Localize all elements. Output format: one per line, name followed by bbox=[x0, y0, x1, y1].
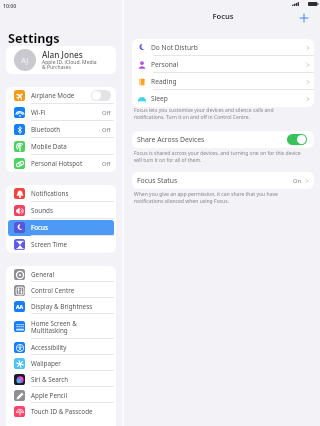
button[interactable]: Wi-Fi bbox=[6, 104, 116, 121]
button[interactable]: Touch ID & Passcode bbox=[6, 403, 116, 419]
button[interactable]: Do Not Disturb bbox=[132, 39, 314, 56]
button[interactable]: Mobile Data bbox=[6, 138, 116, 155]
staticText: Focus bbox=[212, 11, 234, 21]
staticText: Bluetooth bbox=[31, 125, 102, 134]
staticText: Reading bbox=[151, 77, 306, 86]
staticText: AA bbox=[16, 303, 24, 310]
button[interactable]: Share Across Devices bbox=[132, 131, 314, 148]
staticText: Settings bbox=[8, 30, 60, 47]
staticText: Wi-Fi bbox=[31, 108, 102, 117]
staticText: On bbox=[293, 177, 302, 185]
button[interactable]: Focus bbox=[6, 219, 116, 236]
staticText: Personal bbox=[151, 60, 306, 69]
staticText: Sounds bbox=[31, 206, 111, 215]
button[interactable]: Screen Time bbox=[6, 236, 116, 253]
button[interactable]: Accessibility bbox=[6, 339, 116, 355]
button[interactable]: AA bbox=[6, 298, 116, 314]
staticText: Wallpaper bbox=[31, 359, 111, 368]
staticText: Do Not Disturb bbox=[151, 43, 306, 52]
staticText: Focus lets you customise your devices an… bbox=[134, 107, 274, 120]
staticText: Focus bbox=[31, 223, 111, 232]
staticText: Screen Time bbox=[31, 240, 111, 249]
button[interactable]: Reading bbox=[132, 73, 314, 90]
button[interactable]: AJ bbox=[6, 46, 116, 74]
staticText: Airplane Mode bbox=[31, 91, 91, 100]
button[interactable]: Personal Hotspot bbox=[6, 155, 116, 172]
staticText: Siri & Search bbox=[31, 375, 111, 384]
staticText: Share Across Devices bbox=[137, 135, 287, 144]
button[interactable]: Wallpaper bbox=[6, 355, 116, 371]
button[interactable]: Airplane Mode bbox=[6, 87, 116, 104]
staticText: Focus Status bbox=[137, 176, 293, 185]
button[interactable]: Sounds bbox=[6, 202, 116, 219]
staticText: Accessibility bbox=[31, 343, 111, 352]
staticText: Touch ID & Passcode bbox=[31, 407, 111, 416]
button[interactable]: Siri & Search bbox=[6, 371, 116, 387]
staticText: Off bbox=[102, 160, 111, 168]
staticText: Personal Hotspot bbox=[31, 159, 102, 168]
button[interactable]: Personal bbox=[132, 56, 314, 73]
button[interactable]: Home Screen & Multitasking bbox=[6, 314, 116, 339]
staticText: Notifications bbox=[31, 189, 111, 198]
staticText: General bbox=[31, 270, 111, 279]
staticText: Off bbox=[102, 109, 111, 117]
button[interactable]: Add Focus bbox=[297, 11, 310, 24]
staticText: Apple Pencil bbox=[31, 391, 111, 400]
button[interactable]: Bluetooth bbox=[6, 121, 116, 138]
button[interactable]: Control Centre bbox=[6, 282, 116, 298]
button[interactable]: Focus Status bbox=[132, 172, 314, 189]
staticText: AJ bbox=[21, 55, 29, 65]
button[interactable]: Notifications bbox=[6, 185, 116, 202]
staticText: 10:00 bbox=[3, 2, 17, 9]
staticText: Control Centre bbox=[31, 286, 111, 295]
button[interactable]: Apple Pencil bbox=[6, 387, 116, 403]
staticText: Home Screen & Multitasking bbox=[31, 319, 111, 335]
staticText: When you give an app permission, it can … bbox=[134, 191, 278, 204]
staticText: Off bbox=[102, 126, 111, 134]
staticText: Display & Brightness bbox=[31, 302, 111, 311]
staticText: Sleep bbox=[151, 94, 306, 103]
staticText: Focus is shared across your devices, and… bbox=[134, 150, 301, 163]
staticText: Apple ID, iCloud, Media & Purchases bbox=[42, 59, 97, 71]
button[interactable]: Sleep bbox=[132, 90, 314, 107]
staticText: Alan Jones bbox=[42, 49, 83, 60]
button[interactable]: General bbox=[6, 266, 116, 282]
staticText: Mobile Data bbox=[31, 142, 111, 151]
